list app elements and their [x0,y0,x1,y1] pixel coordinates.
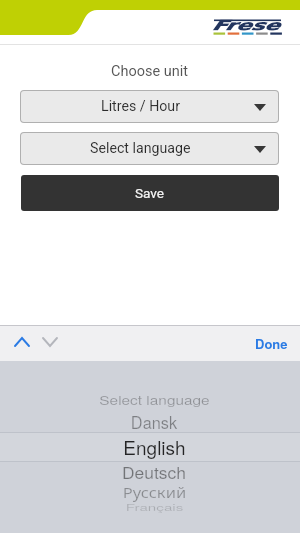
staticText: Litres / Hour [101,98,180,115]
staticText: Done [255,334,288,353]
staticText: Русский [123,483,186,503]
staticText: Choose unit [111,63,189,79]
staticText: Frese [213,17,281,32]
button[interactable]: Select language [21,133,278,164]
staticText: Dansk [131,410,177,433]
staticText: Select language [99,391,210,408]
button[interactable]: Français [4,492,300,522]
button[interactable]: Deutsch [4,456,300,486]
staticText: English [123,433,186,460]
button[interactable]: Litres / Hour [21,91,278,122]
button[interactable]: Next [34,325,66,359]
staticText: Save [135,185,165,201]
staticText: Deutsch [122,460,186,483]
button[interactable]: Previous [6,325,38,359]
button[interactable]: Done [241,325,300,361]
button[interactable]: Select language [4,384,300,414]
button[interactable]: Dansk [4,406,300,436]
button[interactable]: Save [21,175,279,211]
button[interactable]: Русский [4,478,300,508]
staticText: Select language [90,140,191,157]
staticText: Français [125,501,184,514]
button[interactable]: English [4,431,300,461]
